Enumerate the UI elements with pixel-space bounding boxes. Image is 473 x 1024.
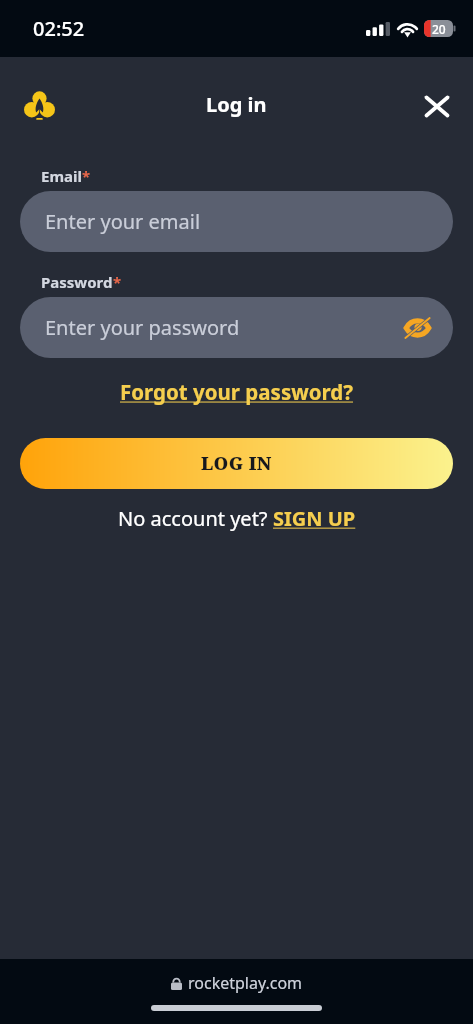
button[interactable]: SIGN UP [273,505,356,532]
staticText: 02:52 [33,15,85,42]
button[interactable]: Forgot your password? [112,375,362,409]
staticText: No account yet? [118,505,273,532]
staticText: * [113,272,122,292]
staticText: Log in [206,91,267,118]
staticText: rocketplay.com [188,972,303,994]
button[interactable]: Enter your password [20,297,453,358]
button[interactable]: Show password [398,309,436,347]
button[interactable]: Home [16,83,62,129]
staticText: Enter your password [45,314,240,341]
staticText: Password [41,272,113,292]
button[interactable]: LOG IN [20,438,453,489]
staticText: Enter your email [45,208,201,235]
button[interactable]: Close [415,84,459,128]
staticText: LOG IN [201,451,272,476]
staticText: 20 [432,21,446,37]
staticText: * [82,166,91,186]
staticText: Email [41,166,82,186]
button[interactable]: Enter your email [20,191,453,252]
